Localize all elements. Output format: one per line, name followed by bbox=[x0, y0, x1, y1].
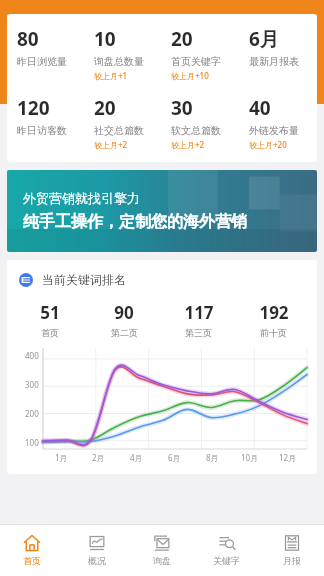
staticText: 当前关键词排名 bbox=[42, 272, 126, 287]
staticText: 较上月+2 bbox=[94, 139, 128, 150]
button[interactable]: 120 bbox=[7, 95, 84, 147]
staticText: 4月 bbox=[130, 452, 143, 463]
staticText: 月报 bbox=[283, 555, 301, 566]
staticText: 117 bbox=[184, 301, 214, 324]
staticText: 10月 bbox=[241, 452, 259, 463]
button[interactable]: 90 bbox=[87, 301, 161, 338]
staticText: 纯手工操作，定制您的海外营销 bbox=[23, 212, 247, 232]
button[interactable]: 20 bbox=[161, 26, 239, 81]
staticText: 昨日浏览量 bbox=[17, 55, 67, 68]
staticText: 较上月+1 bbox=[94, 70, 128, 81]
staticText: 前十页 bbox=[260, 327, 287, 338]
staticText: 10 bbox=[94, 26, 116, 52]
staticText: 首页 bbox=[23, 555, 41, 566]
button[interactable]: 80 bbox=[7, 26, 84, 78]
staticText: 1月 bbox=[55, 452, 68, 463]
staticText: 2月 bbox=[92, 452, 105, 463]
staticText: 较上月+20 bbox=[249, 139, 287, 150]
staticText: 51 bbox=[40, 301, 60, 324]
staticText: 社交总篇数 bbox=[94, 124, 144, 137]
button[interactable]: 月报 bbox=[259, 524, 324, 576]
button[interactable]: 30 bbox=[161, 95, 239, 150]
staticText: 400 bbox=[25, 350, 39, 361]
staticText: 首页 bbox=[41, 327, 59, 338]
button[interactable]: 192 bbox=[236, 301, 311, 338]
staticText: 30 bbox=[171, 95, 193, 121]
button[interactable]: 10 bbox=[84, 26, 161, 81]
staticText: 第三页 bbox=[185, 327, 212, 338]
staticText: 最新月报表 bbox=[249, 55, 299, 68]
button[interactable]: 20 bbox=[84, 95, 161, 150]
staticText: 询盘 bbox=[153, 555, 171, 566]
staticText: 120 bbox=[17, 95, 50, 121]
button[interactable]: 117 bbox=[161, 301, 236, 338]
staticText: 外链发布量 bbox=[249, 124, 299, 137]
button[interactable]: 外贸营销就找引擎力 bbox=[7, 170, 317, 252]
button[interactable]: 关键字 bbox=[194, 524, 259, 576]
staticText: 6月 bbox=[168, 452, 181, 463]
staticText: 关键字 bbox=[213, 555, 240, 566]
button[interactable]: 51 bbox=[13, 301, 87, 338]
staticText: 软文总篇数 bbox=[171, 124, 221, 137]
staticText: 300 bbox=[25, 379, 39, 390]
staticText: 12月 bbox=[279, 452, 297, 463]
staticText: 较上月+2 bbox=[171, 139, 205, 150]
button[interactable]: 当前关键词排名 bbox=[7, 272, 317, 287]
staticText: 80 bbox=[17, 26, 39, 52]
staticText: 外贸营销就找引擎力 bbox=[23, 190, 140, 206]
staticText: 昨日访客数 bbox=[17, 124, 67, 137]
button[interactable]: 询盘 bbox=[129, 524, 194, 576]
staticText: 20 bbox=[171, 26, 193, 52]
staticText: 192 bbox=[259, 301, 289, 324]
staticText: 90 bbox=[114, 301, 134, 324]
staticText: 20 bbox=[94, 95, 116, 121]
button[interactable]: 6月 bbox=[239, 26, 317, 78]
button[interactable]: 首页 bbox=[0, 524, 64, 576]
staticText: 概况 bbox=[88, 555, 106, 566]
staticText: 40 bbox=[249, 95, 271, 121]
button[interactable]: 40 bbox=[239, 95, 317, 150]
staticText: 首页关键字 bbox=[171, 55, 221, 68]
staticText: 较上月+10 bbox=[171, 70, 209, 81]
staticText: 100 bbox=[25, 437, 39, 448]
staticText: 询盘总数量 bbox=[94, 55, 144, 68]
staticText: 6月 bbox=[249, 26, 279, 52]
staticText: 第二页 bbox=[111, 327, 138, 338]
staticText: 200 bbox=[25, 408, 39, 419]
button[interactable]: 概况 bbox=[64, 524, 129, 576]
staticText: 8月 bbox=[206, 452, 219, 463]
